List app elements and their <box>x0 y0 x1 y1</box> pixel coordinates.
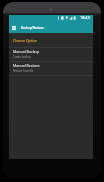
staticText: Manual Backup <box>13 49 40 54</box>
staticText: Create backup <box>13 55 31 59</box>
staticText: 18:43 <box>80 15 90 20</box>
staticText: Backup/Restore <box>21 26 44 30</box>
button[interactable]: Manual Restore <box>9 61 93 75</box>
staticText: Restore from file <box>13 69 34 73</box>
button[interactable]: Manual Backup <box>9 47 93 61</box>
staticText: Choose Option <box>13 38 38 43</box>
button[interactable]: Open navigation menu <box>9 22 19 33</box>
staticText: Manual Restore <box>13 63 40 68</box>
